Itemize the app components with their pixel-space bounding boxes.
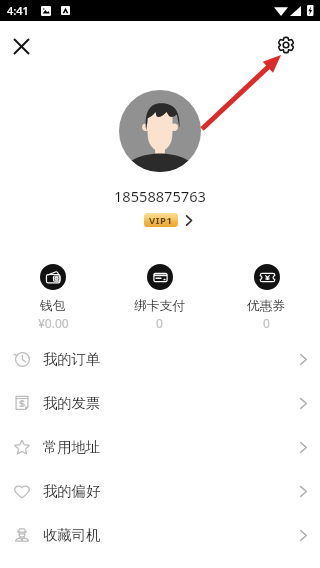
staticText: 我的发票	[43, 394, 101, 412]
staticText: VIP1	[149, 214, 173, 227]
button[interactable]: 我的发票	[0, 381, 320, 425]
staticText: 绑卡支付	[134, 298, 186, 314]
button[interactable]: 常用地址	[0, 425, 320, 469]
staticText: ¥0.00	[38, 315, 69, 331]
staticText: 18558875763	[114, 186, 206, 206]
button[interactable]: Settings	[270, 29, 302, 61]
staticText: 4:41	[7, 3, 29, 18]
button[interactable]: 钱包	[0, 264, 106, 331]
staticText: 常用地址	[43, 438, 101, 456]
button[interactable]: VIP1	[144, 213, 192, 227]
button[interactable]: 收藏司机	[0, 513, 320, 557]
button[interactable]: 绑卡支付	[106, 264, 213, 331]
staticText: 我的偏好	[43, 482, 101, 500]
button[interactable]: 优惠券	[213, 264, 320, 331]
button[interactable]: 我的订单	[0, 337, 320, 381]
staticText: 我的订单	[43, 350, 101, 368]
staticText: 钱包	[40, 298, 66, 314]
staticText: 收藏司机	[43, 526, 101, 544]
button[interactable]: 我的偏好	[0, 469, 320, 513]
staticText: 0	[263, 315, 270, 331]
staticText: 0	[156, 315, 163, 331]
button[interactable]: Close	[5, 30, 37, 62]
staticText: 优惠券	[247, 298, 286, 314]
button[interactable]: Profile photo	[119, 90, 201, 172]
